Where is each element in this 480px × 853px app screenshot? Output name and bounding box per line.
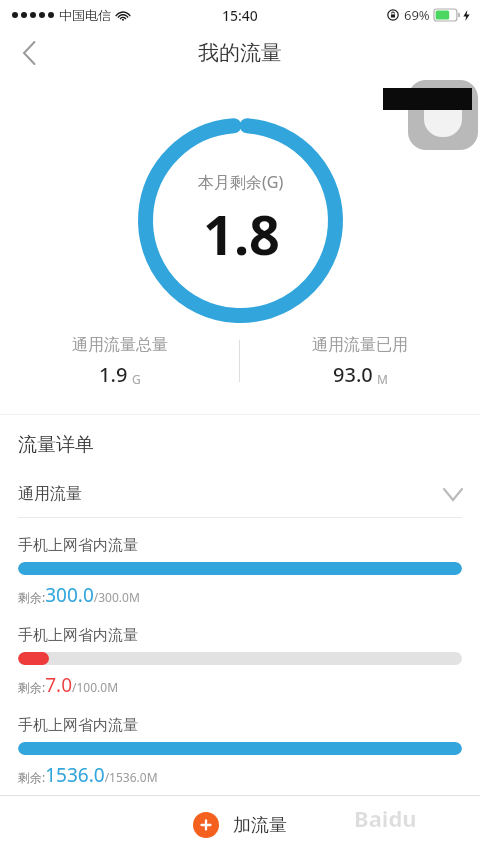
staticText: 手机上网省内流量: [18, 716, 138, 735]
button[interactable]: 通用流量: [18, 479, 462, 509]
staticText: 1.8: [203, 197, 280, 271]
staticText: 本月剩余(G): [198, 171, 284, 193]
other: Expand: [444, 489, 462, 500]
button[interactable]: Data source app: [408, 80, 478, 150]
staticText: 手机上网省内流量: [18, 536, 138, 555]
staticText: 流量详单: [18, 433, 94, 457]
button[interactable]: Back: [0, 30, 58, 76]
staticText: 手机上网省内流量: [18, 626, 138, 645]
staticText: M: [377, 371, 388, 387]
staticText: 15:40: [222, 6, 258, 25]
staticText: 剩余:1536.0/1536.0M: [18, 762, 158, 788]
button[interactable]: 通用流量总量: [0, 335, 239, 388]
button[interactable]: 加流量: [179, 806, 301, 844]
staticText: 加流量: [233, 814, 287, 837]
staticText: Baidu: [354, 803, 417, 833]
staticText: 通用流量: [18, 484, 82, 504]
staticText: 93.0: [333, 361, 373, 388]
staticText: 69%: [404, 6, 430, 24]
button[interactable]: 通用流量已用: [240, 335, 480, 388]
staticText: 通用流量已用: [312, 335, 408, 355]
staticText: 数据来源: [424, 90, 476, 106]
button[interactable]: 手机上网省内流量: [18, 608, 462, 698]
staticText: 1.9: [99, 361, 128, 388]
staticText: 通用流量总量: [72, 335, 168, 355]
staticText: 剩余:300.0/300.0M: [18, 582, 140, 608]
staticText: G: [132, 371, 141, 387]
button[interactable]: 手机上网省内流量: [18, 518, 462, 608]
staticText: 剩余:7.0/100.0M: [18, 672, 119, 698]
staticText: 中国电信: [59, 7, 111, 23]
button[interactable]: 手机上网省内流量: [18, 698, 462, 788]
staticText: 我的流量: [198, 40, 282, 66]
